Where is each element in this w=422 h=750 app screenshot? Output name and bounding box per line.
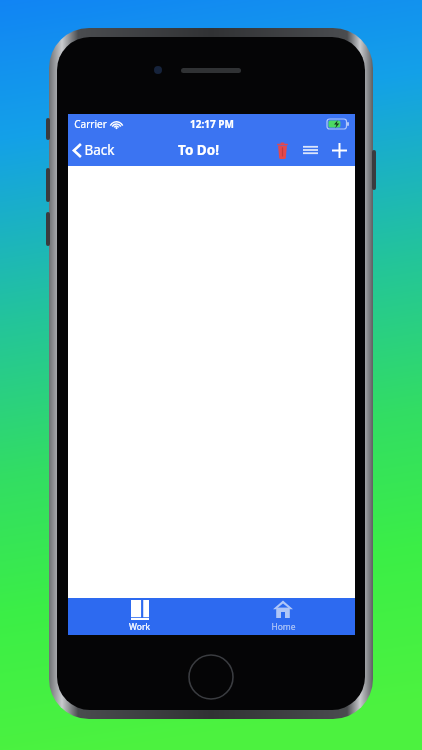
staticText: Carrier [74,117,107,131]
staticText: 12:17 PM [190,117,234,131]
staticText: Work [129,621,150,633]
button[interactable]: Home [211,598,355,635]
button[interactable]: Work [68,598,211,635]
button[interactable]: Add [326,134,355,166]
staticText: Back [84,141,115,159]
button[interactable]: Menu [295,134,326,166]
button[interactable]: Delete [270,134,295,166]
button[interactable]: Back [68,134,123,166]
staticText: Home [271,621,296,633]
staticText: To Do! [178,141,219,159]
